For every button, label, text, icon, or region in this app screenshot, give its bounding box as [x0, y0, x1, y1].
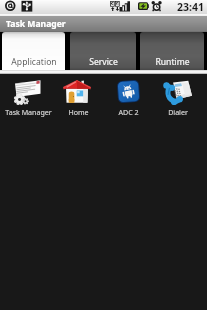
button[interactable]: Application	[2, 32, 65, 72]
staticText: Dialer	[168, 107, 188, 117]
button[interactable]: Runtime	[140, 32, 204, 72]
staticText: Runtime	[155, 56, 190, 68]
button[interactable]: Service	[70, 32, 136, 72]
button[interactable]: Home	[53, 74, 103, 119]
staticText: Task Manager	[5, 107, 52, 117]
button[interactable]: Task Manager	[3, 74, 53, 119]
staticText: Service	[89, 56, 118, 68]
button[interactable]: ADC 2	[103, 74, 153, 119]
staticText: Application	[11, 56, 57, 68]
staticText: 23:41	[177, 0, 204, 14]
staticText: Task Manager	[6, 18, 66, 30]
staticText: Home	[68, 107, 89, 117]
button[interactable]: Dialer	[153, 74, 203, 119]
staticText: ADC 2	[118, 107, 139, 117]
